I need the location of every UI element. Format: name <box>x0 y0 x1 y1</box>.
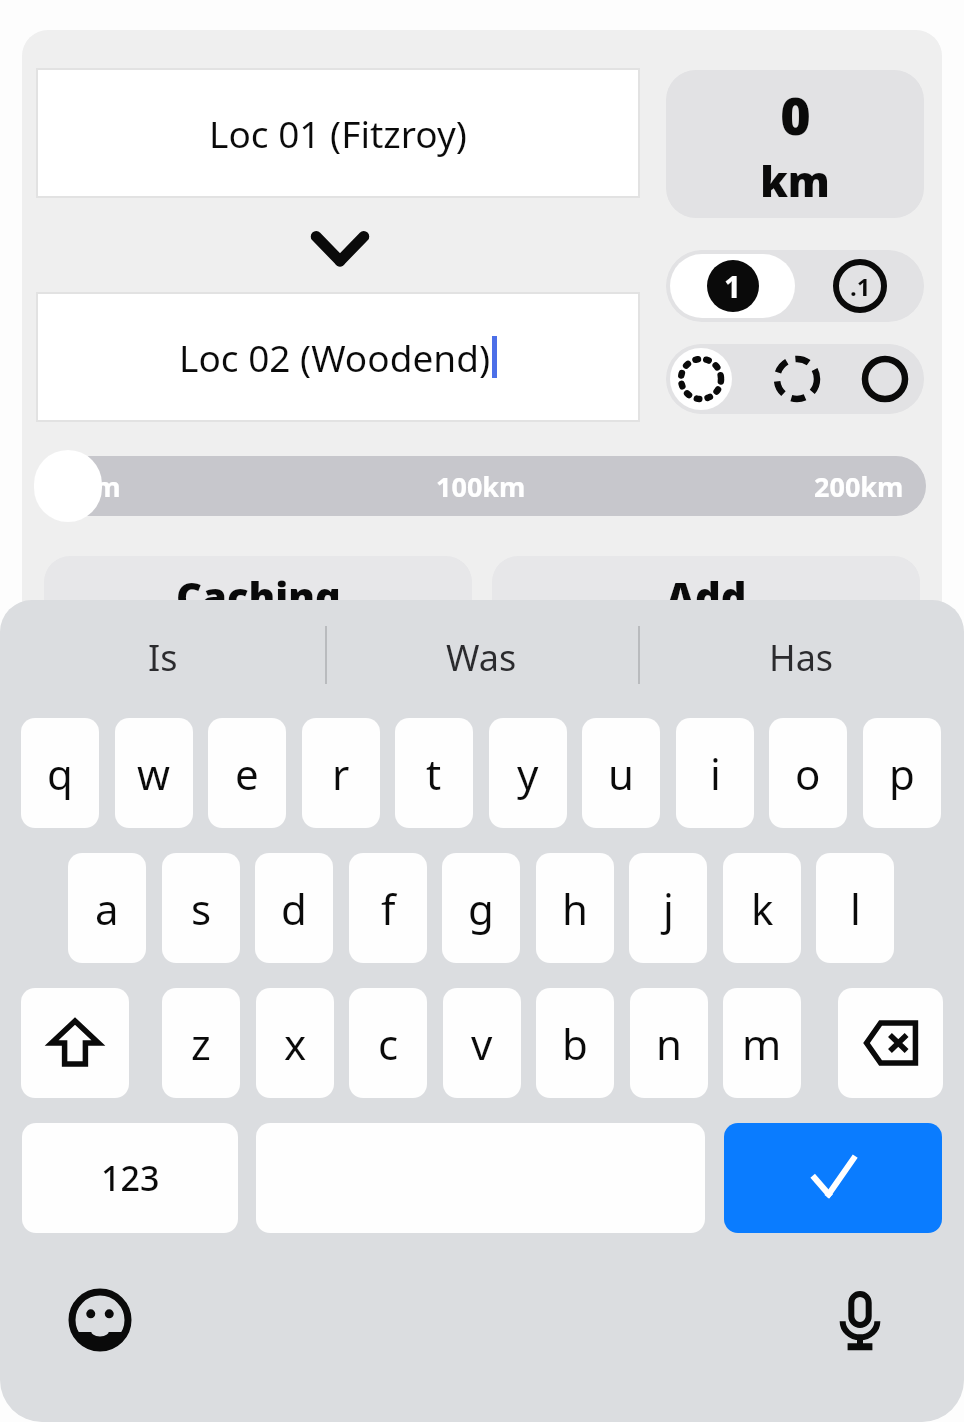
button[interactable]: h <box>536 853 614 963</box>
button[interactable]: Done <box>724 1123 942 1233</box>
staticText: u <box>608 745 634 802</box>
staticText: j <box>663 880 674 937</box>
staticText: Loc 01 (Fitzroy) <box>209 108 467 158</box>
staticText: 100km <box>436 468 526 505</box>
staticText: z <box>191 1015 211 1072</box>
staticText: 123 <box>101 1155 160 1201</box>
button[interactable]: Add <box>492 556 920 636</box>
button[interactable]: 0km <box>36 456 926 516</box>
staticText: k <box>751 880 774 937</box>
staticText: o <box>795 745 821 802</box>
button[interactable]: Dotted circle style <box>670 348 732 410</box>
button[interactable]: s <box>162 853 240 963</box>
button[interactable]: 0 <box>666 70 924 218</box>
staticText: g <box>468 880 494 937</box>
staticText: a <box>95 880 119 937</box>
staticText: .1 <box>850 270 871 303</box>
staticText: y <box>517 745 539 802</box>
button[interactable]: l <box>816 853 894 963</box>
button[interactable]: Radius slider thumb <box>34 450 102 522</box>
button[interactable]: n <box>630 988 708 1098</box>
button[interactable]: Backspace <box>838 988 943 1098</box>
button[interactable]: t <box>395 718 473 828</box>
button[interactable]: r <box>302 718 380 828</box>
button[interactable]: v <box>443 988 521 1098</box>
button[interactable]: Dashed circle style <box>766 348 828 410</box>
button[interactable]: Is <box>0 614 325 700</box>
button[interactable]: Shift <box>21 988 129 1098</box>
staticText: b <box>562 1015 588 1072</box>
staticText: x <box>284 1015 307 1072</box>
button[interactable]: w <box>115 718 193 828</box>
button[interactable]: a <box>68 853 146 963</box>
staticText: c <box>378 1015 399 1072</box>
staticText: s <box>191 880 212 937</box>
button[interactable]: y <box>489 718 567 828</box>
button[interactable]: 123 <box>22 1123 238 1233</box>
button[interactable]: j <box>629 853 707 963</box>
staticText: n <box>656 1015 682 1072</box>
staticText: Has <box>769 633 834 682</box>
staticText: r <box>332 745 350 802</box>
button[interactable]: p <box>863 718 941 828</box>
button[interactable]: Emoji <box>52 1272 148 1368</box>
button[interactable]: e <box>208 718 286 828</box>
staticText: Caching <box>176 569 341 623</box>
staticText: w <box>137 745 171 802</box>
staticText: Add <box>666 569 747 623</box>
staticText: m <box>742 1015 782 1072</box>
staticText: v <box>471 1015 493 1072</box>
button[interactable]: q <box>21 718 99 828</box>
button[interactable]: Swap locations <box>313 230 367 266</box>
button[interactable]: z <box>162 988 240 1098</box>
staticText: km <box>760 152 830 209</box>
button[interactable]: Has <box>638 614 964 700</box>
button[interactable]: c <box>349 988 427 1098</box>
button[interactable]: Whole number precision <box>670 254 795 318</box>
button[interactable]: d <box>255 853 333 963</box>
staticText: f <box>381 880 396 937</box>
button[interactable]: u <box>582 718 660 828</box>
staticText: Is <box>148 633 178 682</box>
staticText: i <box>710 745 721 802</box>
button[interactable]: x <box>256 988 334 1098</box>
staticText: 0 <box>780 79 811 150</box>
button[interactable]: f <box>349 853 427 963</box>
staticText: t <box>426 745 442 802</box>
staticText: h <box>562 880 588 937</box>
button[interactable]: o <box>769 718 847 828</box>
staticText: 200km <box>814 468 904 505</box>
staticText: d <box>281 880 307 937</box>
staticText: 1 <box>724 266 742 307</box>
button[interactable]: i <box>676 718 754 828</box>
button[interactable]: Voice input <box>812 1272 908 1368</box>
button[interactable]: Decimal precision <box>799 254 920 318</box>
staticText: p <box>889 745 915 802</box>
button[interactable]: Solid circle style <box>854 348 916 410</box>
staticText: 0km <box>62 468 121 505</box>
button[interactable]: Caching <box>44 556 472 636</box>
staticText: e <box>235 745 259 802</box>
button[interactable]: Was <box>325 614 638 700</box>
staticText: l <box>850 880 861 937</box>
button[interactable]: b <box>536 988 614 1098</box>
button[interactable]: k <box>723 853 801 963</box>
staticText: Loc 02 (Woodend) <box>179 332 490 382</box>
button[interactable]: Loc 01 (Fitzroy) <box>36 68 640 198</box>
staticText: Was <box>446 633 517 682</box>
button[interactable]: Loc 02 (Woodend) <box>36 292 640 422</box>
button[interactable]: m <box>723 988 801 1098</box>
button[interactable]: g <box>442 853 520 963</box>
staticText: q <box>47 745 73 802</box>
